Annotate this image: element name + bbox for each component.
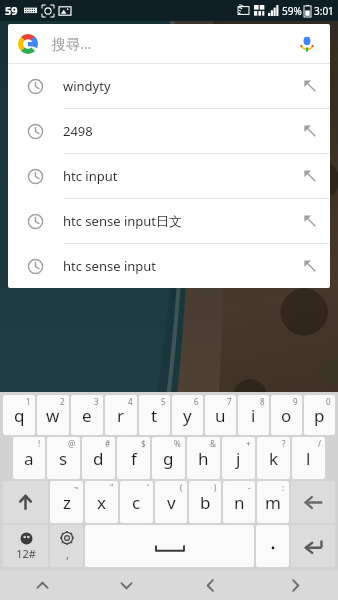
staticText: 2498 <box>63 122 93 140</box>
button[interactable]: Up <box>0 570 84 600</box>
staticText: 3:01 <box>314 4 334 18</box>
staticText: g <box>163 447 174 470</box>
button[interactable]: u <box>205 395 236 435</box>
staticText: htc sense input <box>63 257 156 275</box>
staticText: u <box>215 404 226 427</box>
button[interactable]: y <box>172 395 203 435</box>
button[interactable]: o <box>271 395 302 435</box>
button[interactable]: v <box>155 481 187 523</box>
staticText: : <box>282 482 285 493</box>
button[interactable]: windyty <box>8 64 330 108</box>
button[interactable]: e <box>71 395 103 435</box>
button[interactable]: b <box>189 481 221 523</box>
staticText: $ <box>141 438 146 449</box>
staticText: w <box>46 404 60 427</box>
staticText: # <box>105 438 111 449</box>
button[interactable]: Voice search <box>294 31 320 57</box>
staticText: & <box>210 438 216 449</box>
staticText: 4 <box>128 396 133 407</box>
staticText: 8 <box>260 396 265 407</box>
staticText: 12# <box>16 546 36 561</box>
staticText: r <box>117 404 125 427</box>
button[interactable]: z <box>50 481 83 523</box>
staticText: " <box>110 482 114 493</box>
button[interactable]: l <box>292 437 325 479</box>
staticText: ) <box>214 482 217 493</box>
button[interactable]: h <box>187 437 220 479</box>
staticText: 59% <box>282 4 302 18</box>
staticText: ( <box>180 482 183 493</box>
staticText: l <box>306 447 311 470</box>
button[interactable]: d <box>82 437 115 479</box>
button[interactable]: t <box>139 395 170 435</box>
button[interactable]: Backspace <box>291 481 335 523</box>
button[interactable]: s <box>47 437 80 479</box>
staticText: 2 <box>60 396 65 407</box>
staticText: ! <box>38 438 41 449</box>
button[interactable]: c <box>120 481 153 523</box>
button[interactable]: Shift <box>3 481 48 523</box>
button[interactable]: Enter <box>291 525 335 567</box>
staticText: 6 <box>194 396 199 407</box>
button[interactable]: 搜尋... <box>8 24 330 63</box>
button[interactable]: Down <box>84 570 168 600</box>
button[interactable]: f <box>117 437 150 479</box>
button[interactable]: n <box>223 481 255 523</box>
button[interactable]: htc sense input <box>8 244 330 288</box>
staticText: ? <box>282 438 286 449</box>
staticText: p <box>314 404 325 427</box>
button[interactable]: a <box>13 437 45 479</box>
button[interactable]: k <box>257 437 290 479</box>
staticText: % <box>174 438 181 449</box>
staticText: htc input <box>63 167 118 185</box>
staticText: , <box>66 547 69 562</box>
staticText: + <box>246 438 251 449</box>
staticText: 9 <box>293 396 298 407</box>
button[interactable]: Left <box>168 570 253 600</box>
staticText: ' <box>147 482 149 493</box>
button[interactable]: htc sense input日文 <box>8 199 330 243</box>
staticText: h <box>198 447 209 470</box>
staticText: k <box>269 447 279 470</box>
button[interactable]: 12# <box>3 525 48 567</box>
button[interactable]: Insert suggestion <box>290 199 330 243</box>
staticText: - <box>248 482 251 493</box>
button[interactable]: Insert suggestion <box>290 244 330 288</box>
staticText: 搜尋... <box>52 34 92 53</box>
button[interactable]: Period <box>256 525 289 567</box>
button[interactable]: Space <box>85 525 254 567</box>
button[interactable]: q <box>3 395 35 435</box>
button[interactable]: p <box>304 395 335 435</box>
staticText: s <box>59 447 68 470</box>
button[interactable]: Insert suggestion <box>290 154 330 198</box>
staticText: 7 <box>227 396 232 407</box>
staticText: o <box>281 404 292 427</box>
staticText: x <box>97 491 106 514</box>
staticText: v <box>167 491 176 514</box>
staticText: a <box>24 447 34 470</box>
staticText: 1 <box>26 396 31 407</box>
button[interactable]: g <box>152 437 185 479</box>
button[interactable]: x <box>85 481 118 523</box>
button[interactable]: r <box>105 395 137 435</box>
button[interactable]: htc input <box>8 154 330 198</box>
staticText: y <box>183 404 192 427</box>
button[interactable]: j <box>222 437 255 479</box>
button[interactable]: Right <box>253 570 338 600</box>
staticText: m <box>265 491 281 514</box>
button[interactable]: Insert suggestion <box>290 109 330 153</box>
staticText: windyty <box>63 77 111 95</box>
staticText: e <box>82 404 92 427</box>
staticText: t <box>151 404 158 427</box>
button[interactable]: 2498 <box>8 109 330 153</box>
button[interactable]: m <box>257 481 289 523</box>
button[interactable]: Insert suggestion <box>290 64 330 108</box>
button[interactable]: w <box>37 395 69 435</box>
staticText: n <box>234 491 245 514</box>
staticText: z <box>63 491 71 514</box>
staticText: 5 <box>161 396 166 407</box>
button[interactable]: Keyboard settings <box>50 525 83 567</box>
button[interactable]: i <box>238 395 269 435</box>
staticText: b <box>200 491 211 514</box>
staticText: d <box>93 447 104 470</box>
